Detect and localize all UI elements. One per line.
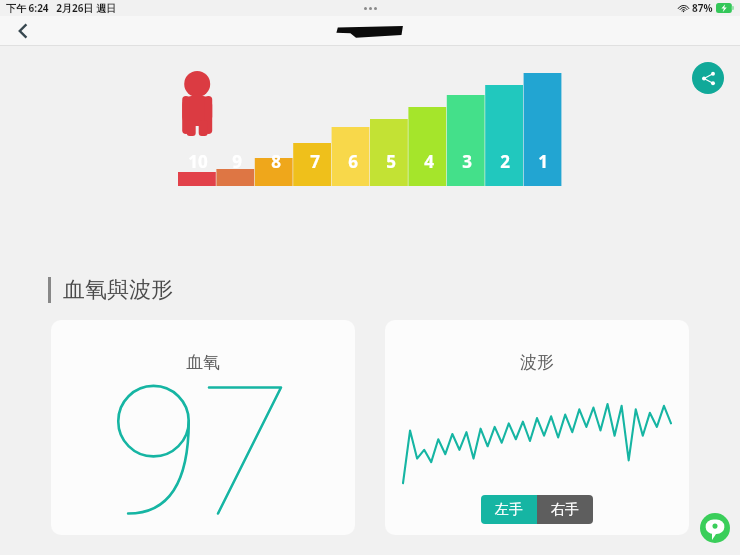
- button[interactable]: 血氧: [51, 320, 355, 535]
- staticText: 5: [386, 150, 396, 173]
- button[interactable]: 右手: [537, 495, 593, 524]
- staticText: 下午 6:24 2月26日 週日: [6, 1, 117, 15]
- staticText: 6: [348, 150, 358, 173]
- button[interactable]: Back: [8, 16, 38, 46]
- staticText: 血氧: [186, 352, 220, 373]
- staticText: 2: [500, 150, 510, 173]
- staticText: 右手: [551, 501, 579, 519]
- button[interactable]: LINE: [700, 513, 730, 543]
- staticText: 1: [538, 150, 548, 173]
- staticText: 血氧與波形: [63, 276, 173, 304]
- staticText: 波形: [520, 352, 554, 373]
- staticText: 7: [310, 150, 320, 173]
- staticText: 10: [188, 150, 208, 173]
- staticText: 4: [424, 150, 434, 173]
- staticText: 3: [462, 150, 472, 173]
- button[interactable]: 左手: [481, 495, 537, 524]
- staticText: 8: [271, 150, 281, 173]
- staticText: 87%: [692, 1, 713, 15]
- button[interactable]: Share: [692, 62, 724, 94]
- staticText: 左手: [495, 501, 523, 519]
- staticText: 9: [232, 150, 242, 173]
